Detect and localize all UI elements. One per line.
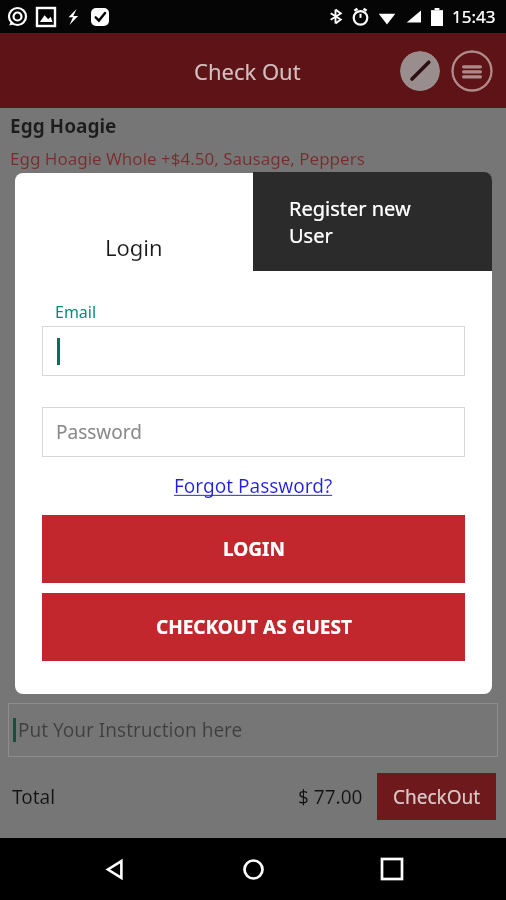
staticText: Egg Hoagie [10, 113, 117, 139]
button[interactable]: Password [42, 407, 465, 457]
staticText: 15:43 [452, 5, 496, 28]
staticText: Register new User [289, 195, 411, 249]
button[interactable]: Recents [368, 845, 416, 893]
staticText: $ 77.00 [298, 784, 363, 810]
button[interactable] [42, 326, 465, 376]
staticText: Total [12, 784, 56, 810]
button[interactable]: LOGIN [42, 515, 465, 583]
button[interactable]: Edit [400, 51, 440, 91]
button[interactable]: CheckOut [377, 773, 496, 820]
button[interactable]: Back [91, 845, 139, 893]
button[interactable]: Menu [451, 50, 493, 92]
staticText: Egg Hoagie Whole +$4.50, Sausage, Pepper… [10, 147, 365, 170]
staticText: Login [105, 232, 163, 262]
staticText: Forgot Password? [174, 473, 333, 499]
staticText: Check Out [194, 56, 301, 86]
button[interactable]: Forgot Password? [170, 469, 337, 503]
button[interactable]: Register new User [253, 172, 492, 271]
button[interactable]: Home [229, 845, 277, 893]
button[interactable]: Login [15, 199, 253, 295]
staticText: CheckOut [393, 784, 481, 810]
staticText: Put Your Instruction here [18, 717, 243, 743]
staticText: CHECKOUT AS GUEST [156, 614, 352, 640]
staticText: Email [55, 301, 97, 323]
staticText: Password [56, 419, 142, 445]
button[interactable]: Put Your Instruction here [8, 703, 498, 757]
button[interactable]: CHECKOUT AS GUEST [42, 593, 465, 661]
staticText: LOGIN [223, 536, 285, 562]
